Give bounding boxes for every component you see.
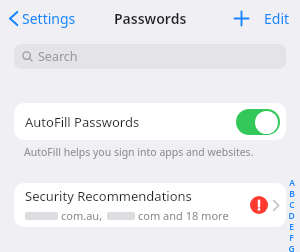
button[interactable]: AutoFill Passwords: [14, 103, 286, 140]
staticText: A: [289, 177, 295, 188]
button[interactable]: Edit: [262, 5, 292, 32]
staticText: F: [289, 232, 294, 243]
staticText: Search: [38, 48, 78, 65]
staticText: B: [289, 188, 295, 199]
staticText: C: [289, 199, 295, 210]
staticText: Passwords: [114, 9, 187, 28]
button[interactable]: Alphabet index: [286, 177, 297, 252]
staticText: AutoFill helps you sign into apps and we…: [24, 145, 254, 159]
button[interactable]: Add password: [230, 7, 253, 30]
staticText: D: [288, 210, 295, 221]
staticText: Edit: [264, 9, 290, 28]
staticText: E: [289, 221, 294, 232]
button[interactable]: Settings: [6, 5, 79, 32]
staticText: com.au,: [61, 208, 103, 223]
other: Warning: [250, 196, 268, 214]
button[interactable]: Search: [14, 44, 286, 69]
button[interactable]: AutoFill Passwords toggle, on: [236, 109, 280, 135]
staticText: Settings: [22, 9, 76, 28]
staticText: G: [288, 243, 295, 252]
staticText: Security Recommendations: [25, 187, 192, 205]
staticText: AutoFill Passwords: [25, 113, 140, 131]
staticText: com and 18 more: [138, 208, 229, 223]
button[interactable]: Security Recommendations: [14, 183, 286, 227]
